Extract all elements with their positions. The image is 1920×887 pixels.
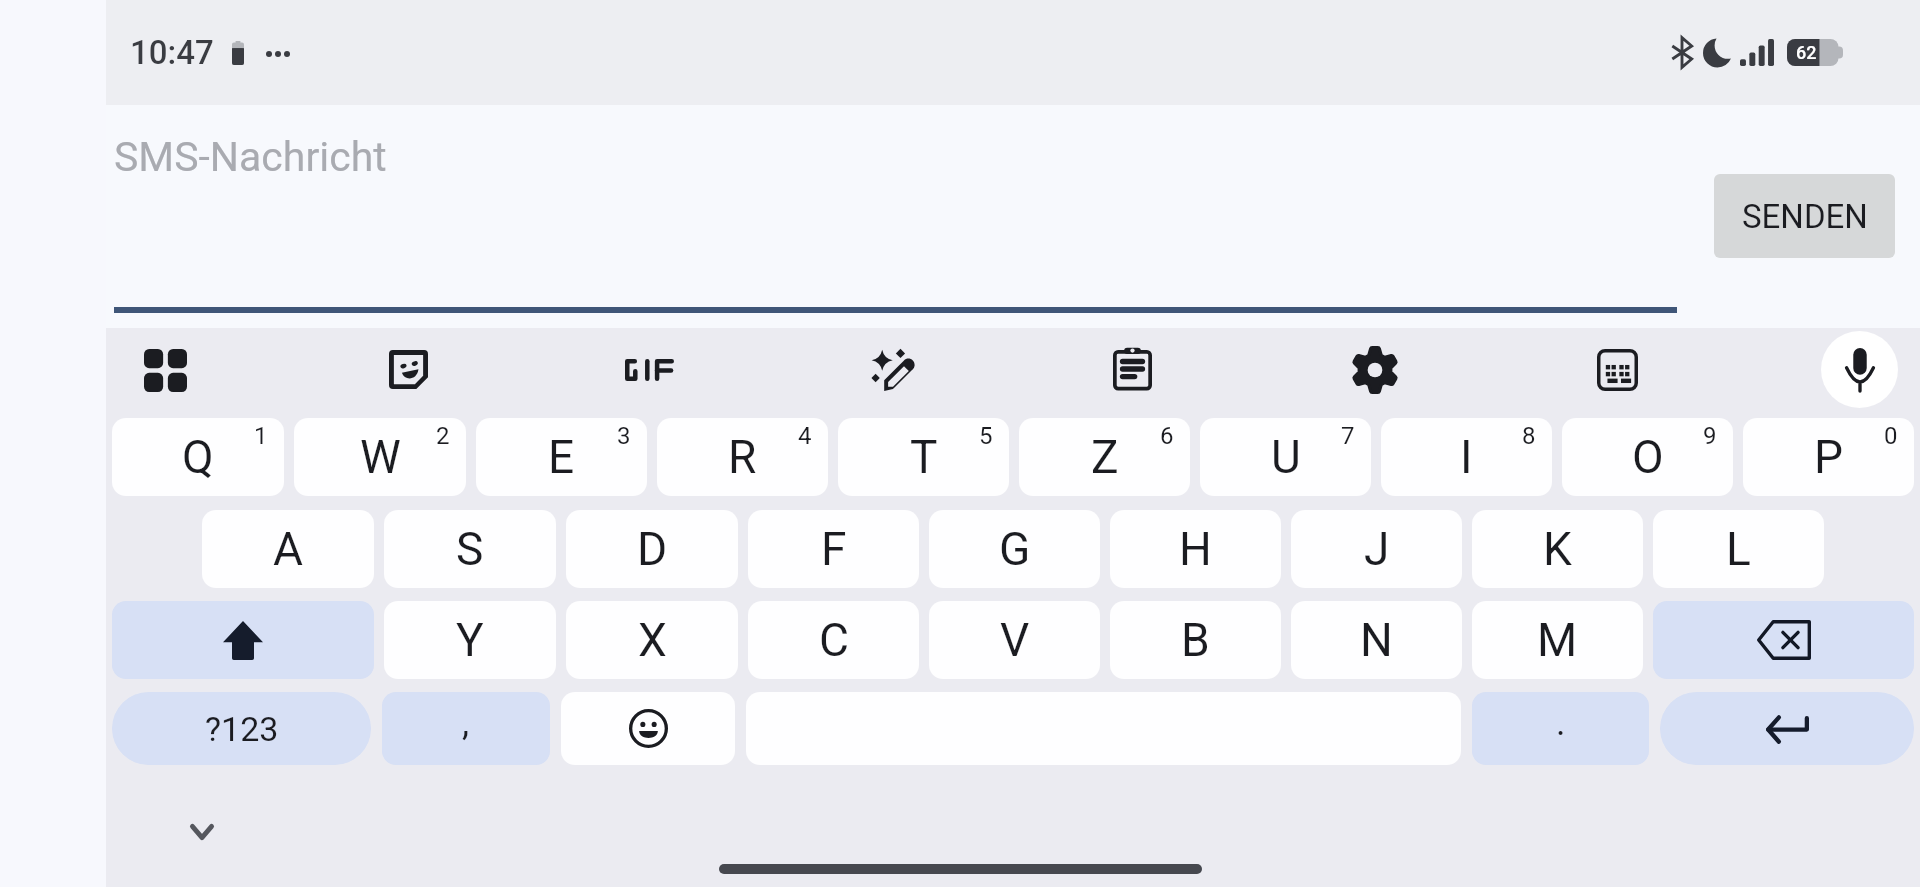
staticText: S	[456, 522, 484, 576]
button[interactable]: Write	[869, 347, 913, 391]
button[interactable]: B	[1110, 601, 1281, 679]
button[interactable]: Emoji	[561, 692, 735, 765]
staticText: M	[1537, 613, 1578, 667]
button[interactable]: G	[929, 510, 1100, 588]
staticText: 10:47	[130, 33, 214, 72]
staticText: P	[1814, 430, 1844, 484]
staticText: K	[1543, 522, 1572, 576]
button[interactable]: ?123	[112, 692, 371, 765]
button[interactable]: GIF	[625, 359, 674, 381]
staticText: A	[273, 522, 304, 576]
button[interactable]: S	[384, 510, 556, 588]
button[interactable]: .	[1472, 692, 1649, 765]
staticText: 5	[979, 422, 993, 450]
staticText: 6	[1160, 422, 1174, 450]
staticText: 4	[798, 422, 812, 450]
staticText: ?123	[205, 709, 279, 749]
button[interactable]: L	[1653, 510, 1824, 588]
button[interactable]: T	[838, 418, 1009, 496]
staticText: 62	[1796, 42, 1817, 63]
staticText: I	[1460, 430, 1473, 484]
staticText: 9	[1703, 422, 1717, 450]
button[interactable]: Y	[384, 601, 556, 679]
staticText: L	[1726, 522, 1751, 576]
button[interactable]: Keyboard layout	[1597, 349, 1638, 391]
staticText: 7	[1341, 422, 1355, 450]
button[interactable]: E	[476, 418, 647, 496]
button[interactable]: Apps	[144, 349, 187, 392]
button[interactable]: SMS-Nachricht	[106, 105, 1920, 328]
staticText: Q	[182, 430, 214, 484]
staticText: D	[637, 522, 668, 576]
staticText: O	[1632, 430, 1664, 484]
button[interactable]: Clipboard	[1113, 347, 1152, 389]
staticText: J	[1364, 522, 1390, 576]
staticText: 8	[1522, 422, 1536, 450]
button[interactable]: I	[1381, 418, 1552, 496]
button[interactable]: Voice input	[1821, 331, 1898, 408]
staticText: R	[728, 430, 757, 484]
staticText: SENDEN	[1742, 197, 1868, 236]
button[interactable]: ,	[382, 692, 550, 765]
button[interactable]: O	[1562, 418, 1733, 496]
button[interactable]: P	[1743, 418, 1914, 496]
button[interactable]: Q	[112, 418, 284, 496]
staticText: W	[360, 430, 401, 484]
button[interactable]: W	[294, 418, 466, 496]
button[interactable]: Hide keyboard	[168, 802, 236, 862]
button[interactable]: X	[566, 601, 738, 679]
staticText: U	[1271, 430, 1301, 484]
button[interactable]: U	[1200, 418, 1371, 496]
staticText: E	[548, 430, 575, 484]
button[interactable]: J	[1291, 510, 1462, 588]
button[interactable]: M	[1472, 601, 1643, 679]
staticText: Z	[1091, 430, 1119, 484]
staticText: Y	[456, 613, 484, 667]
button[interactable]: Enter	[1660, 692, 1914, 765]
staticText: B	[1181, 613, 1210, 667]
staticText: SMS-Nachricht	[114, 133, 387, 181]
staticText: N	[1360, 613, 1393, 667]
button[interactable]: Stickers	[389, 350, 428, 389]
staticText: G	[999, 522, 1031, 576]
button[interactable]: Shift	[112, 601, 374, 679]
staticText: .	[1556, 702, 1566, 744]
staticText: H	[1179, 522, 1212, 576]
button[interactable]: A	[202, 510, 374, 588]
staticText: T	[910, 430, 938, 484]
button[interactable]: H	[1110, 510, 1281, 588]
button[interactable]: SENDEN	[1714, 174, 1895, 258]
button[interactable]: Settings	[1354, 349, 1396, 391]
button[interactable]: V	[929, 601, 1100, 679]
button[interactable]: Z	[1019, 418, 1190, 496]
staticText: X	[638, 613, 667, 667]
staticText: 2	[436, 422, 450, 450]
staticText: C	[819, 613, 849, 667]
staticText: 0	[1884, 422, 1898, 450]
staticText: ,	[462, 702, 470, 744]
button[interactable]: F	[748, 510, 919, 588]
button[interactable]: C	[748, 601, 919, 679]
staticText: F	[821, 522, 847, 576]
staticText: 1	[254, 422, 268, 450]
button[interactable]: K	[1472, 510, 1643, 588]
staticText: V	[1000, 613, 1030, 667]
button[interactable]: N	[1291, 601, 1462, 679]
staticText: 3	[617, 422, 631, 450]
button[interactable]: R	[657, 418, 828, 496]
button[interactable]: D	[566, 510, 738, 588]
button[interactable]: Backspace	[1653, 601, 1914, 679]
